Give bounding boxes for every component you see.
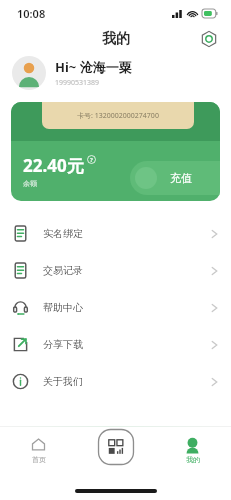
- staticText: 19990531389: [55, 78, 100, 88]
- button[interactable]: Help: [87, 155, 96, 164]
- staticText: Hi~ 沧海一粟: [55, 58, 132, 76]
- staticText: 实名绑定: [43, 227, 83, 240]
- button[interactable]: 卡号: 1320002000274700: [11, 102, 220, 201]
- button[interactable]: 充值: [130, 161, 220, 195]
- button[interactable]: 交易记录: [0, 252, 231, 289]
- button[interactable]: Scan QR code: [97, 428, 135, 466]
- button[interactable]: 分享下载: [0, 326, 231, 363]
- button[interactable]: Hi~ 沧海一粟: [0, 52, 231, 94]
- staticText: 关于我们: [43, 375, 83, 388]
- staticText: 22.40元: [23, 154, 84, 177]
- staticText: 交易记录: [43, 264, 83, 277]
- button[interactable]: 实名绑定: [0, 215, 231, 252]
- staticText: 分享下载: [43, 338, 83, 351]
- staticText: 卡号: 1320002000274700: [77, 111, 159, 121]
- button[interactable]: 我的: [154, 435, 231, 466]
- button[interactable]: Settings: [198, 28, 220, 50]
- staticText: 10:08: [17, 6, 46, 21]
- staticText: 首页: [32, 455, 46, 464]
- staticText: 我的: [186, 455, 200, 464]
- staticText: ?: [90, 156, 93, 164]
- button[interactable]: 首页: [0, 435, 77, 466]
- staticText: 帮助中心: [43, 301, 83, 314]
- staticText: 充值: [170, 171, 192, 185]
- staticText: 余额: [23, 179, 37, 188]
- button[interactable]: 帮助中心: [0, 289, 231, 326]
- staticText: 我的: [102, 30, 130, 48]
- button[interactable]: 关于我们: [0, 363, 231, 400]
